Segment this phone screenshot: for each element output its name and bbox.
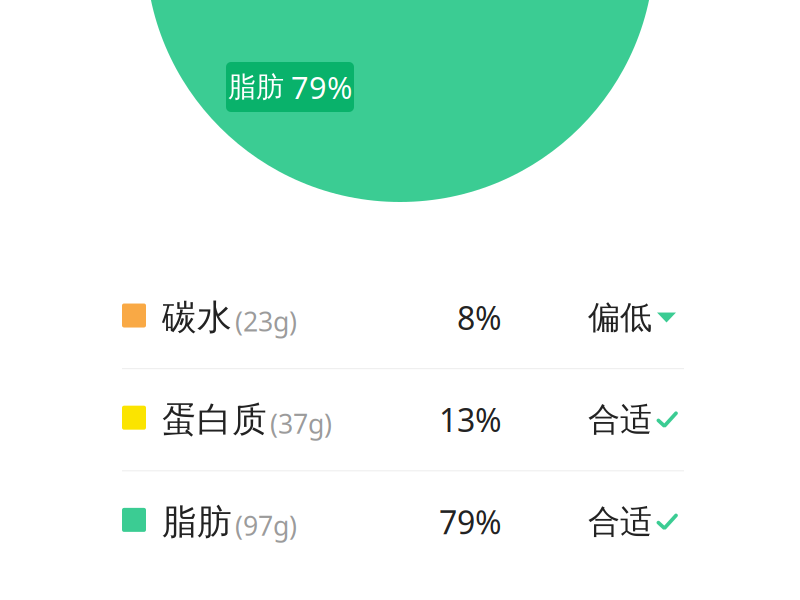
staticText: (97g) [235, 508, 297, 543]
button[interactable]: 脂肪 [122, 471, 684, 572]
staticText: (23g) [235, 303, 297, 339]
staticText: 8% [457, 296, 502, 339]
staticText: 碳水 [162, 296, 232, 339]
staticText: 79% [291, 67, 352, 107]
staticText: 偏低 [588, 298, 652, 337]
staticText: 脂肪 [228, 70, 284, 104]
staticText: 合适 [588, 502, 652, 541]
button[interactable]: 碳水 [122, 267, 684, 368]
staticText: (37g) [270, 406, 332, 441]
staticText: 13% [439, 398, 502, 441]
staticText: 79% [439, 501, 502, 543]
staticText: 蛋白质 [162, 398, 267, 441]
staticText: 脂肪 [162, 501, 232, 543]
button[interactable]: 蛋白质 [122, 369, 684, 470]
staticText: 合适 [588, 400, 652, 439]
